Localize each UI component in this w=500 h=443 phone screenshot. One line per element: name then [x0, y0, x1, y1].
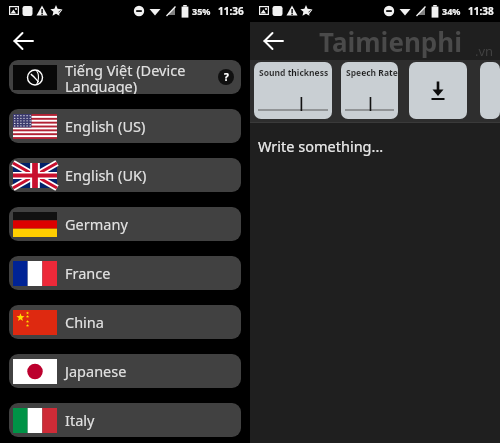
button[interactable]: Back — [2, 22, 46, 60]
button[interactable]: Back — [252, 22, 296, 60]
button[interactable]: Sound thickness — [254, 62, 332, 119]
button[interactable]: China — [9, 305, 241, 339]
staticText: English (US) — [65, 116, 146, 136]
button[interactable]: Download — [409, 62, 467, 119]
button[interactable]: Speech Rate — [341, 62, 398, 119]
button[interactable] — [480, 62, 500, 119]
staticText: 34% — [442, 5, 461, 17]
staticText: Tiếng Việt (Device Language) — [65, 60, 211, 94]
staticText: English (UK) — [65, 165, 147, 185]
button[interactable]: English (UK) — [9, 158, 241, 192]
staticText: 11:36 — [218, 4, 244, 18]
staticText: 35% — [192, 5, 211, 17]
staticText: Sound thickness — [259, 67, 329, 79]
staticText: Write something... — [258, 136, 384, 156]
button[interactable]: English (US) — [9, 109, 241, 143]
button[interactable]: Tiếng Việt (Device Language) — [9, 60, 241, 94]
button[interactable]: Help — [218, 69, 234, 85]
button[interactable]: Italy — [9, 403, 241, 437]
staticText: .vn — [475, 42, 494, 60]
button[interactable]: France — [9, 256, 241, 290]
button[interactable]: Japanese — [9, 354, 241, 388]
staticText: ? — [224, 70, 229, 84]
staticText: Germany — [65, 214, 128, 234]
staticText: Japanese — [65, 361, 127, 381]
button[interactable]: Germany — [9, 207, 241, 241]
other: Download — [409, 62, 467, 119]
staticText: Speech Rate — [346, 67, 398, 79]
staticText: Italy — [65, 410, 95, 430]
staticText: France — [65, 263, 111, 283]
staticText: China — [65, 312, 104, 332]
staticText: Taimienphi — [319, 24, 462, 59]
staticText: 11:38 — [468, 4, 494, 18]
